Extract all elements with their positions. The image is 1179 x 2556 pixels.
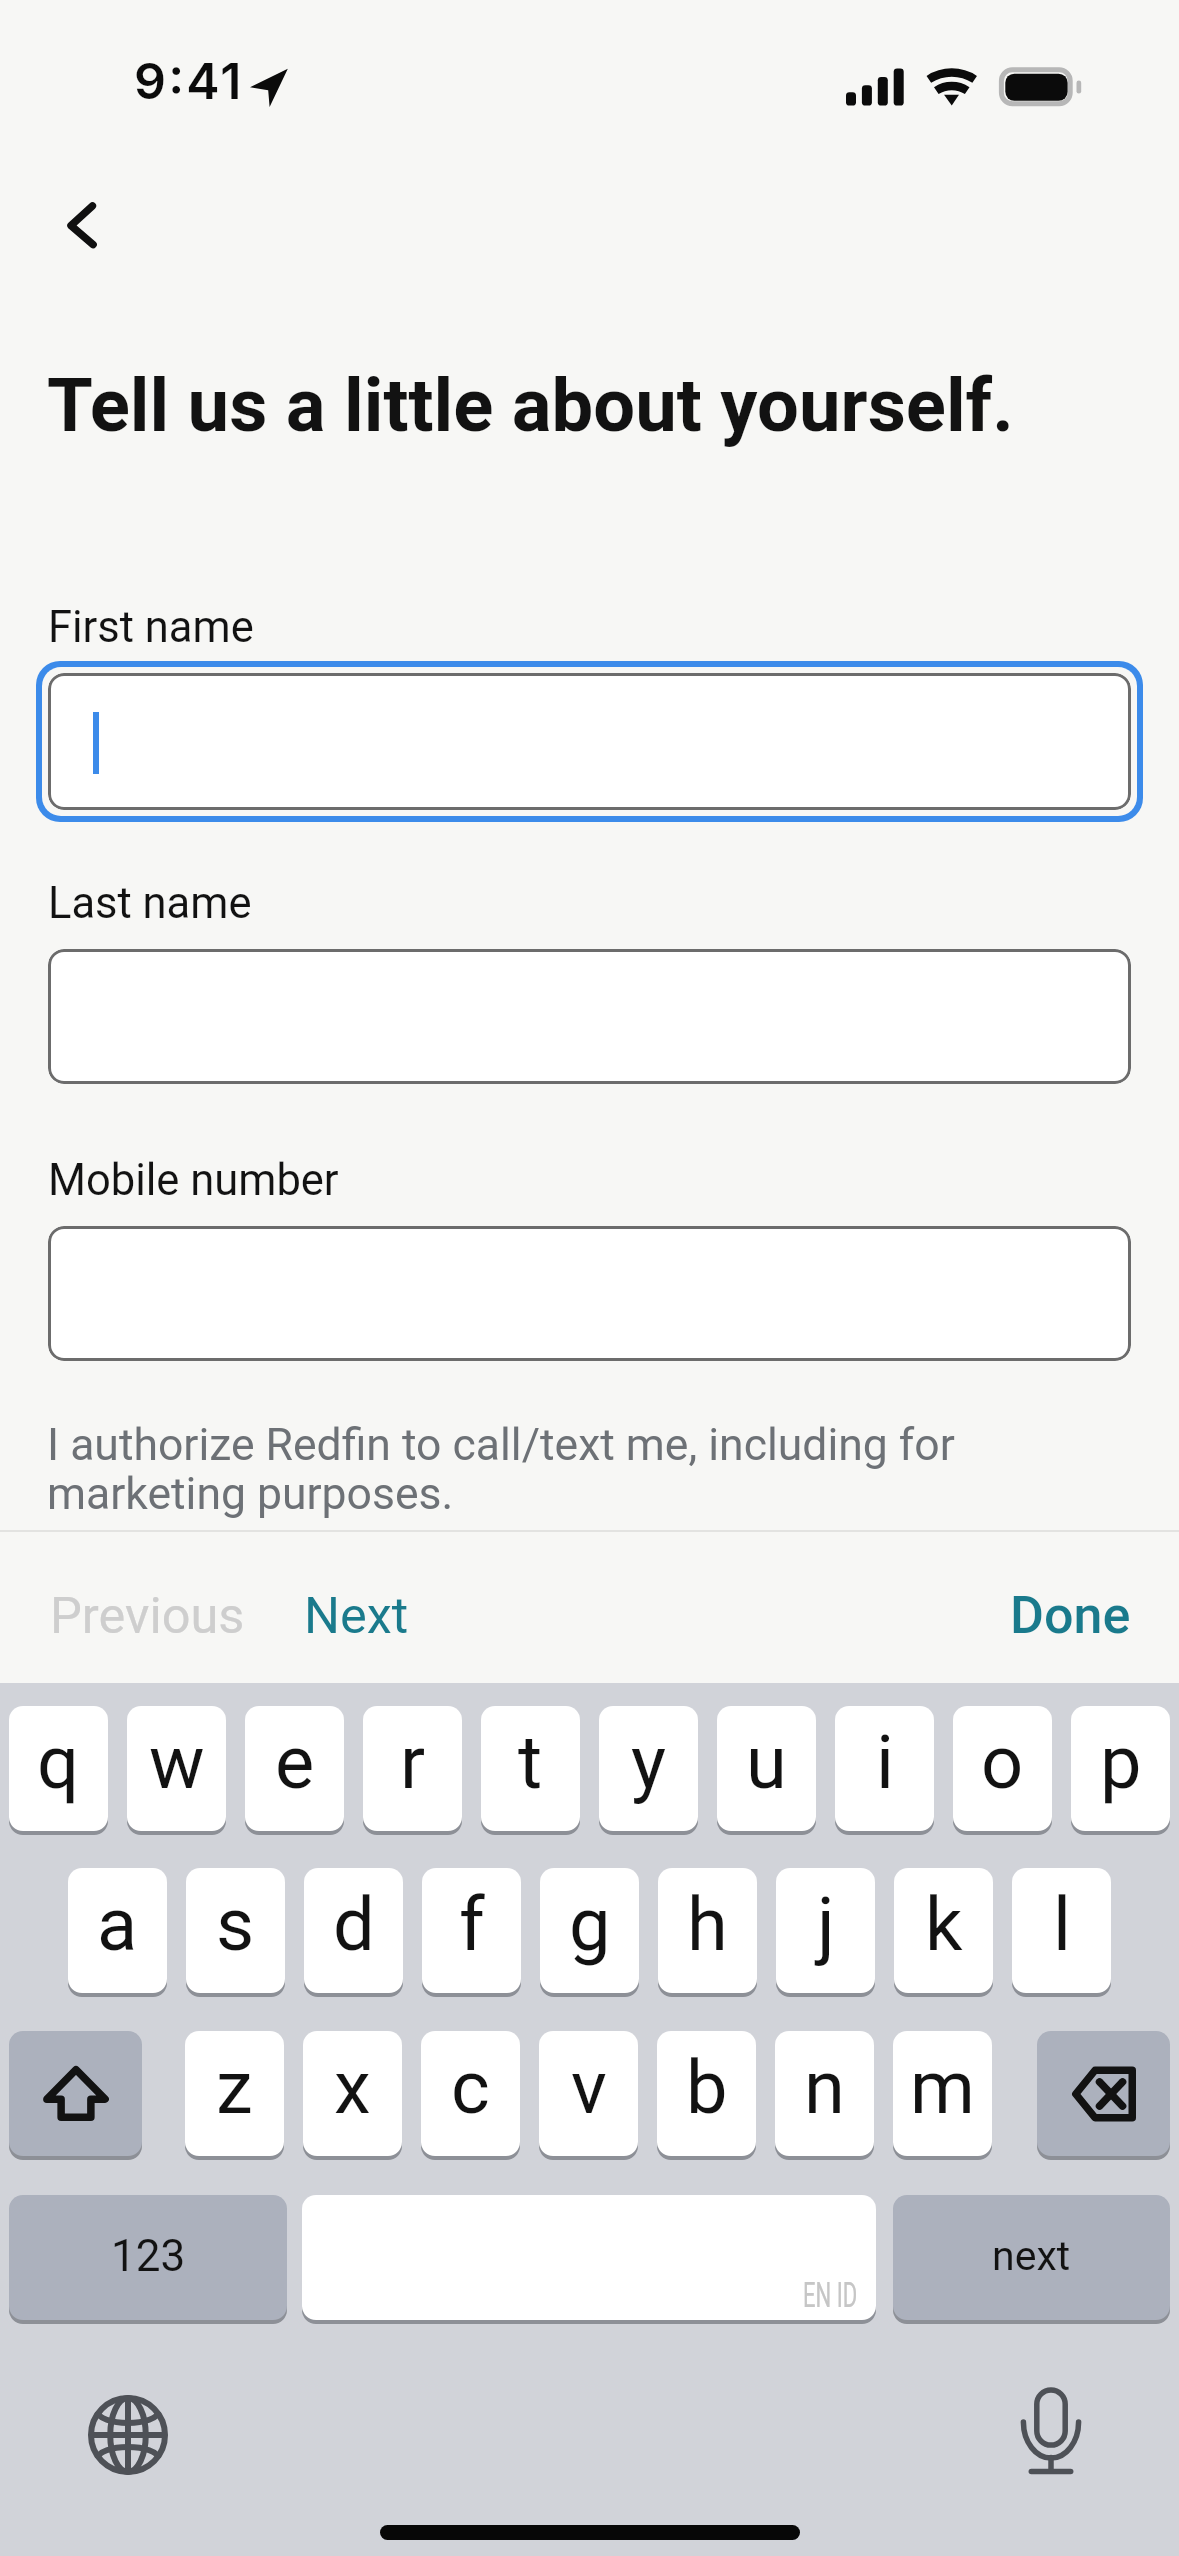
staticText: Tell us a little about yourself. <box>47 362 1177 449</box>
button[interactable] <box>48 1226 1131 1361</box>
staticText: 9:41 <box>134 51 244 111</box>
button[interactable]: next <box>893 2195 1170 2320</box>
staticText: h <box>687 1881 728 1968</box>
button[interactable] <box>36 661 1143 822</box>
staticText: e <box>275 1719 315 1806</box>
button[interactable]: b <box>657 2031 756 2156</box>
staticText: Done <box>1010 1585 1131 1646</box>
button[interactable]: v <box>539 2031 638 2156</box>
staticText: p <box>1100 1719 1142 1806</box>
button[interactable]: o <box>953 1706 1052 1831</box>
button[interactable]: Shift <box>9 2031 142 2156</box>
staticText: k <box>925 1881 963 1968</box>
button[interactable]: Change keyboard <box>84 2391 172 2479</box>
staticText: Previous <box>50 1586 245 1645</box>
button[interactable]: k <box>894 1868 993 1993</box>
staticText: Mobile number <box>48 1155 339 1206</box>
button[interactable]: m <box>893 2031 992 2156</box>
staticText: Last name <box>48 878 252 929</box>
button[interactable]: 123 <box>9 2195 287 2320</box>
button[interactable]: h <box>658 1868 757 1993</box>
button[interactable]: q <box>9 1706 108 1831</box>
button[interactable]: Previous <box>20 1557 275 1673</box>
button[interactable]: p <box>1071 1706 1170 1831</box>
staticText: m <box>910 2044 975 2131</box>
button[interactable]: Back <box>30 175 135 275</box>
staticText: j <box>817 1881 835 1968</box>
button[interactable]: r <box>363 1706 462 1831</box>
staticText: a <box>97 1881 138 1968</box>
button[interactable]: u <box>717 1706 816 1831</box>
staticText: s <box>216 1881 255 1968</box>
staticText: d <box>333 1881 375 1968</box>
staticText: i <box>876 1719 894 1806</box>
staticText: EN ID <box>803 2275 858 2316</box>
button[interactable]: Backspace <box>1037 2031 1170 2156</box>
staticText: next <box>992 2232 1071 2280</box>
button[interactable]: c <box>421 2031 520 2156</box>
button[interactable]: Dictate <box>1018 2385 1084 2477</box>
staticText: b <box>686 2044 728 2131</box>
button[interactable]: t <box>481 1706 580 1831</box>
button[interactable]: x <box>303 2031 402 2156</box>
button[interactable]: i <box>835 1706 934 1831</box>
button[interactable]: e <box>245 1706 344 1831</box>
staticText: v <box>571 2044 607 2131</box>
button[interactable]: n <box>775 2031 874 2156</box>
staticText: u <box>746 1719 787 1806</box>
button[interactable]: s <box>186 1868 285 1993</box>
button[interactable]: w <box>127 1706 226 1831</box>
staticText: g <box>569 1881 611 1968</box>
button[interactable]: Space <box>302 2195 876 2320</box>
button[interactable]: Done <box>985 1557 1155 1673</box>
button[interactable]: d <box>304 1868 403 1993</box>
staticText: c <box>451 2044 490 2131</box>
button[interactable]: Next <box>281 1557 431 1673</box>
staticText: First name <box>48 602 254 653</box>
staticText: t <box>518 1719 543 1806</box>
staticText: Next <box>304 1586 409 1645</box>
staticText: l <box>1053 1881 1071 1968</box>
button[interactable]: a <box>68 1868 167 1993</box>
button[interactable]: z <box>185 2031 284 2156</box>
button[interactable] <box>48 949 1131 1084</box>
button[interactable]: l <box>1012 1868 1111 1993</box>
staticText: o <box>981 1719 1024 1806</box>
button[interactable]: y <box>599 1706 698 1831</box>
button[interactable]: f <box>422 1868 521 1993</box>
staticText: r <box>400 1719 426 1806</box>
button[interactable]: g <box>540 1868 639 1993</box>
staticText: q <box>37 1719 80 1806</box>
staticText: z <box>216 2044 253 2131</box>
staticText: y <box>631 1719 667 1806</box>
staticText: f <box>459 1881 485 1968</box>
staticText: 123 <box>111 2230 186 2282</box>
staticText: x <box>334 2044 371 2131</box>
staticText: w <box>149 1719 205 1806</box>
staticText: I authorize Redfin to call/text me, incl… <box>47 1419 1047 1520</box>
button[interactable]: j <box>776 1868 875 1993</box>
staticText: n <box>804 2044 845 2131</box>
